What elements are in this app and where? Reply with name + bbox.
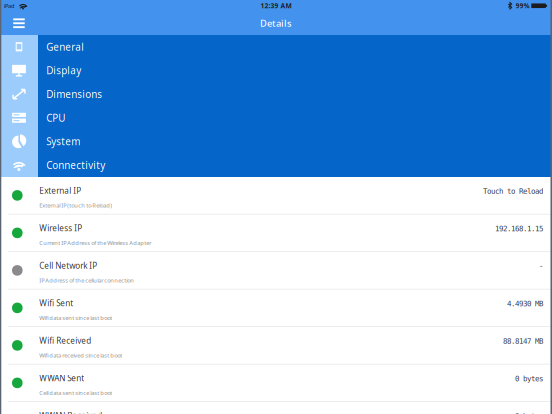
staticText: 192.168.1.15 — [495, 224, 543, 233]
staticText: 0 bytes — [515, 412, 543, 414]
staticText: External IP — [39, 185, 81, 196]
staticText: iPad — [4, 2, 15, 10]
button[interactable]: Wifi Received — [0, 327, 552, 364]
staticText: Touch to Reload — [483, 187, 543, 195]
staticText: WWAN Received — [39, 410, 102, 414]
button[interactable]: Menu — [0, 11, 44, 35]
button[interactable]: WWAN Sent — [0, 364, 552, 402]
staticText: Display — [46, 64, 81, 77]
staticText: Wifi Sent — [39, 297, 73, 309]
staticText: 12:39 AM — [260, 1, 291, 10]
button[interactable]: External IP — [0, 177, 552, 214]
staticText: Wifi data sent since last boot — [39, 314, 112, 322]
button[interactable]: Display — [38, 59, 552, 82]
staticText: IP Address of the cellular connection — [39, 276, 134, 284]
staticText: Connectivity — [46, 158, 105, 172]
staticText: Details — [260, 17, 292, 30]
button[interactable]: Cell Network IP — [0, 252, 552, 289]
staticText: 88.8147 MB — [503, 337, 543, 345]
staticText: General — [46, 40, 84, 53]
staticText: Wifi data received since last boot — [39, 351, 122, 359]
button[interactable]: General — [38, 35, 552, 59]
staticText: External IP (touch to Reload) — [39, 201, 112, 209]
staticText: Current IP Address of the Wireless Adapt… — [39, 239, 151, 247]
staticText: Wifi Received — [39, 335, 91, 346]
staticText: 99% — [516, 1, 530, 10]
button[interactable]: CPU — [38, 106, 552, 130]
button[interactable]: Dimensions — [38, 82, 552, 106]
staticText: 4.4930 MB — [507, 299, 543, 308]
staticText: - — [539, 262, 543, 270]
staticText: WWAN Sent — [39, 372, 84, 384]
staticText: CPU — [46, 111, 65, 124]
button[interactable]: Wireless IP — [0, 214, 552, 252]
staticText: Wireless IP — [39, 222, 82, 234]
button[interactable]: WWAN Received — [0, 402, 552, 414]
button[interactable]: Connectivity — [38, 153, 552, 177]
staticText: Cell data sent since last boot — [39, 389, 112, 397]
staticText: System — [46, 135, 80, 148]
staticText: Dimensions — [46, 87, 102, 101]
staticText: Cell Network IP — [39, 260, 97, 271]
staticText: 0 bytes — [515, 374, 543, 383]
button[interactable]: Wifi Sent — [0, 289, 552, 327]
button[interactable]: System — [38, 130, 552, 153]
